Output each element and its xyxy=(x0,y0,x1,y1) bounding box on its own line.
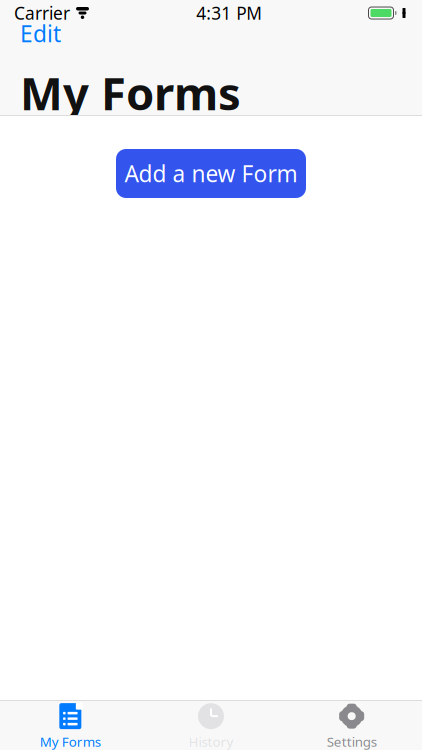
button[interactable]: Edit xyxy=(0,12,81,54)
button[interactable]: My Forms xyxy=(0,697,141,750)
staticText: Edit xyxy=(20,18,61,48)
staticText: Add a new Form xyxy=(124,158,297,188)
staticText: My Forms xyxy=(20,62,241,123)
button[interactable]: History xyxy=(141,697,281,750)
staticText: 4:31 PM xyxy=(196,1,262,24)
button[interactable]: Add a new Form xyxy=(116,149,306,198)
staticText: Settings xyxy=(327,733,377,750)
staticText: My Forms xyxy=(40,733,101,750)
button[interactable]: Settings xyxy=(281,697,422,750)
staticText: History xyxy=(188,733,233,750)
staticText: Carrier xyxy=(14,1,70,24)
